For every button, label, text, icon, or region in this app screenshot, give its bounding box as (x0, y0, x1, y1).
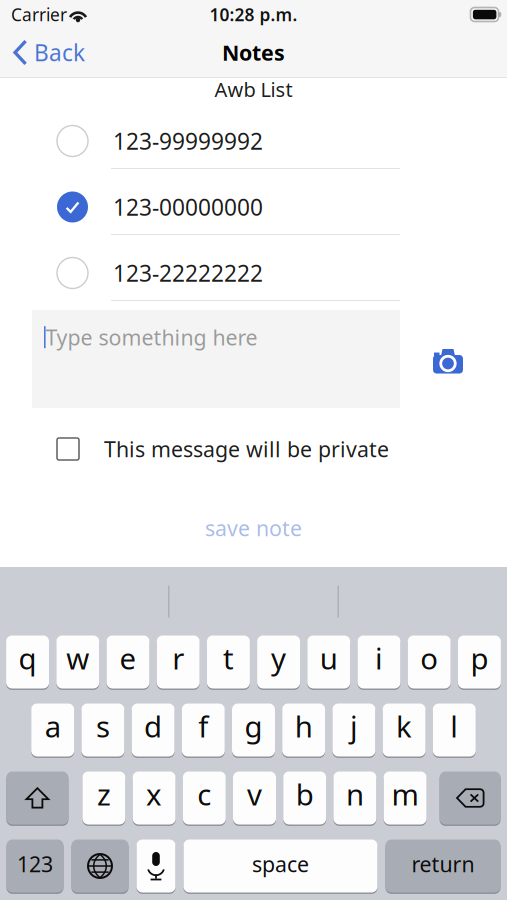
staticText: z (97, 774, 111, 813)
button[interactable]: y (257, 634, 300, 689)
button[interactable]: Next keyboard (71, 838, 128, 893)
button[interactable]: b (283, 770, 326, 825)
button[interactable]: Back (0, 28, 99, 76)
staticText: e (119, 638, 136, 677)
button[interactable]: a (31, 702, 74, 757)
button[interactable]: z (82, 770, 125, 825)
button[interactable]: k (383, 702, 426, 757)
button[interactable]: l (433, 702, 476, 757)
button[interactable]: q (6, 634, 49, 689)
button[interactable]: This message will be private (0, 427, 507, 471)
staticText: v (247, 774, 262, 813)
staticText: i (375, 638, 383, 677)
button[interactable]: u (307, 634, 350, 689)
button[interactable]: d (132, 702, 175, 757)
button[interactable]: Delete (440, 770, 501, 825)
button[interactable]: Dictate (136, 838, 175, 893)
staticText: g (244, 706, 262, 745)
staticText: h (295, 706, 313, 745)
button[interactable]: Shift (6, 770, 68, 825)
staticText: Awb List (214, 76, 292, 103)
staticText: t (223, 638, 234, 677)
button[interactable]: h (282, 702, 325, 757)
button[interactable]: v (233, 770, 276, 825)
button[interactable]: r (157, 634, 200, 689)
staticText: Type something here (46, 323, 258, 351)
staticText: 123-22222222 (113, 258, 263, 288)
button[interactable]: m (384, 770, 427, 825)
staticText: q (19, 638, 37, 677)
button[interactable]: x (133, 770, 176, 825)
staticText: Back (34, 37, 85, 67)
button[interactable]: n (333, 770, 376, 825)
button[interactable]: o (408, 634, 451, 689)
staticText: Carrier (11, 3, 67, 26)
staticText: k (396, 706, 412, 745)
button[interactable]: g (232, 702, 275, 757)
staticText: a (45, 706, 61, 745)
staticText: b (296, 774, 314, 813)
staticText: f (198, 706, 208, 745)
staticText: p (470, 638, 488, 677)
button[interactable]: p (458, 634, 501, 689)
staticText: c (197, 774, 211, 813)
staticText: n (346, 774, 364, 813)
button[interactable]: i (357, 634, 400, 689)
button[interactable]: save note (0, 508, 507, 548)
staticText: w (66, 638, 89, 677)
staticText: 123 (17, 850, 53, 878)
button[interactable]: space (183, 838, 377, 893)
button[interactable]: e (106, 634, 149, 689)
button[interactable]: w (56, 634, 99, 689)
button[interactable]: 123-00000000 (0, 174, 507, 240)
staticText: 10:28 p.m. (209, 3, 297, 26)
staticText: l (450, 706, 458, 745)
staticText: save note (205, 514, 302, 542)
button[interactable]: c (183, 770, 226, 825)
staticText: return (411, 850, 474, 878)
staticText: u (320, 638, 338, 677)
staticText: y (271, 638, 286, 677)
button[interactable]: j (332, 702, 375, 757)
staticText: 123-99999992 (113, 126, 263, 156)
staticText: This message will be private (104, 435, 389, 463)
staticText: s (96, 706, 110, 745)
button[interactable]: f (182, 702, 225, 757)
button[interactable]: t (207, 634, 250, 689)
button[interactable]: return (385, 838, 500, 893)
button[interactable]: s (81, 702, 124, 757)
staticText: Notes (222, 38, 285, 67)
button[interactable]: 123 (6, 838, 63, 893)
staticText: o (420, 638, 438, 677)
staticText: space (252, 850, 309, 878)
button[interactable]: 123-22222222 (0, 240, 507, 306)
staticText: r (172, 638, 184, 677)
button[interactable]: Take photo (426, 337, 470, 381)
staticText: 123-00000000 (113, 192, 263, 222)
staticText: m (392, 774, 419, 813)
button[interactable]: 123-99999992 (0, 108, 507, 174)
staticText: x (146, 774, 162, 813)
staticText: d (144, 706, 162, 745)
staticText: j (350, 706, 358, 745)
